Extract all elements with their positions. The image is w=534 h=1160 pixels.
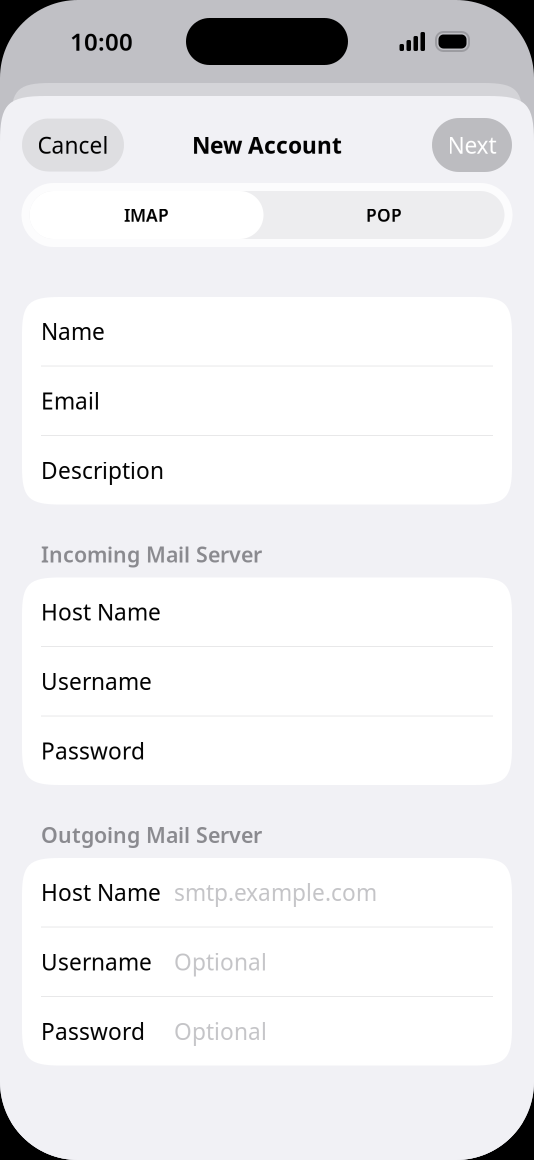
- staticText: Password: [41, 736, 145, 766]
- staticText: 10:00: [70, 26, 133, 57]
- staticText: Email: [41, 386, 100, 416]
- button[interactable]: Username: [22, 927, 512, 996]
- staticText: smtp.example.com: [174, 877, 377, 907]
- staticText: POP: [366, 203, 402, 226]
- staticText: New Account: [192, 130, 342, 160]
- button[interactable]: Email: [22, 366, 512, 435]
- staticText: Incoming Mail Server: [41, 540, 262, 568]
- staticText: IMAP: [124, 203, 169, 226]
- button[interactable]: Next: [432, 118, 512, 172]
- staticText: Cancel: [37, 130, 108, 160]
- button[interactable]: Password: [22, 997, 512, 1065]
- staticText: Next: [447, 130, 496, 160]
- button[interactable]: IMAP: [29, 191, 263, 239]
- staticText: Host Name: [41, 597, 161, 627]
- button[interactable]: Cancel: [22, 118, 124, 171]
- staticText: Optional: [174, 947, 267, 977]
- staticText: Description: [41, 455, 164, 485]
- button[interactable]: Password: [22, 716, 512, 785]
- staticText: Username: [41, 947, 152, 977]
- button[interactable]: POP: [263, 191, 504, 239]
- staticText: Optional: [174, 1016, 267, 1046]
- staticText: Password: [41, 1016, 145, 1046]
- staticText: Name: [41, 316, 105, 346]
- button[interactable]: Username: [22, 647, 512, 715]
- button[interactable]: Description: [22, 436, 512, 504]
- staticText: Username: [41, 666, 152, 696]
- staticText: Host Name: [41, 877, 161, 907]
- button[interactable]: Host Name: [22, 577, 512, 646]
- button[interactable]: Host Name: [22, 858, 512, 926]
- button[interactable]: Name: [22, 297, 512, 365]
- staticText: Outgoing Mail Server: [41, 821, 262, 849]
